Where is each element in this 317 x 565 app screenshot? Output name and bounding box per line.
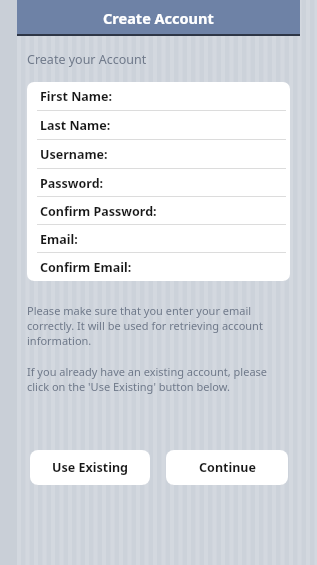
- staticText: Confirm Email:: [40, 259, 132, 276]
- button[interactable]: Last Name:: [27, 111, 290, 140]
- staticText: Username:: [40, 146, 108, 163]
- button[interactable]: First Name:: [27, 82, 290, 111]
- staticText: First Name:: [40, 88, 112, 105]
- button[interactable]: Username:: [27, 140, 290, 169]
- button[interactable]: Confirm Email:: [27, 253, 290, 281]
- button[interactable]: Email:: [27, 225, 290, 253]
- staticText: Email:: [40, 231, 78, 248]
- button[interactable]: Password:: [27, 169, 290, 197]
- staticText: Continue: [199, 459, 256, 476]
- staticText: Create your Account: [27, 51, 147, 68]
- staticText: If you already have an existing account,…: [27, 364, 290, 394]
- staticText: Create Account: [103, 8, 214, 28]
- staticText: Last Name:: [40, 117, 111, 134]
- button[interactable]: Continue: [166, 450, 288, 485]
- staticText: Confirm Password:: [40, 203, 157, 220]
- staticText: Password:: [40, 175, 104, 192]
- staticText: Use Existing: [52, 459, 128, 476]
- button[interactable]: Confirm Password:: [27, 197, 290, 225]
- staticText: Please make sure that you enter your ema…: [27, 303, 290, 348]
- button[interactable]: Use Existing: [30, 450, 150, 485]
